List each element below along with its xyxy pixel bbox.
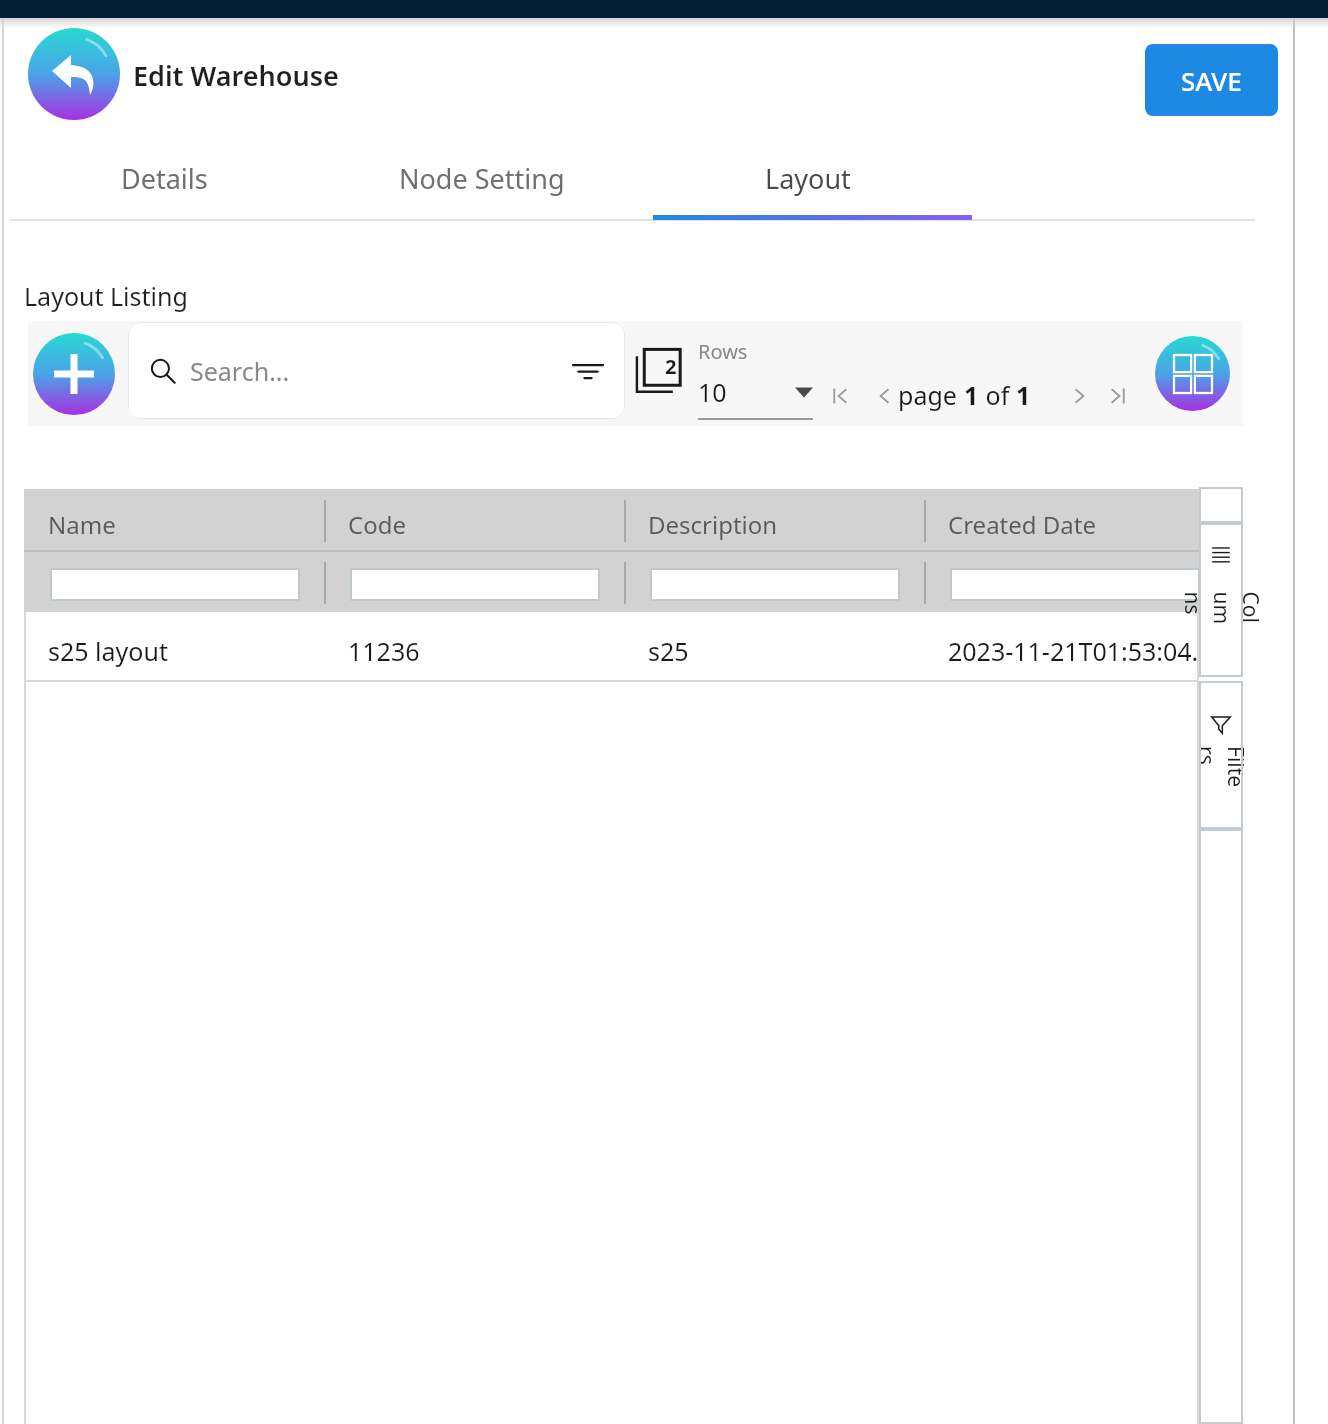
staticText: Node Setting (399, 160, 565, 197)
button[interactable]: Next page (1062, 372, 1098, 420)
button[interactable]: First page (822, 372, 858, 420)
staticText: Rows (698, 338, 748, 365)
button[interactable]: Back (28, 28, 120, 120)
button[interactable]: Add (33, 333, 115, 415)
staticText: SAVE (1181, 63, 1242, 98)
staticText: Edit Warehouse (133, 57, 339, 94)
staticText: Created Date (948, 508, 1096, 541)
button[interactable] (950, 568, 1200, 601)
staticText: 1 (1016, 378, 1031, 412)
button[interactable]: Details (81, 145, 248, 211)
button[interactable]: Columns (1199, 523, 1243, 677)
staticText: page (898, 378, 964, 412)
staticText: Name (48, 508, 116, 541)
button[interactable]: Page size (636, 348, 682, 394)
staticText: s25 layout (48, 634, 318, 668)
staticText: Description (648, 508, 778, 541)
staticText: Columns (1177, 591, 1264, 635)
button[interactable] (50, 568, 300, 601)
button[interactable] (24, 612, 1199, 680)
staticText: Details (121, 160, 208, 197)
staticText: 11236 (348, 634, 618, 668)
button[interactable]: Last page (1100, 372, 1136, 420)
staticText: 2023-11-21T01:53:04.61 (948, 634, 1218, 668)
staticText: of (979, 378, 1016, 412)
button[interactable] (350, 568, 600, 601)
button[interactable]: SAVE (1145, 44, 1278, 116)
staticText: Search... (190, 354, 290, 388)
staticText: Layout (765, 160, 851, 197)
button[interactable] (650, 568, 900, 601)
button[interactable]: Rows per page (698, 368, 813, 416)
staticText: 2 (665, 353, 677, 380)
button[interactable]: Layout (725, 145, 891, 211)
staticText: Layout Listing (24, 279, 188, 313)
staticText: Filters (1192, 746, 1250, 790)
staticText: 10 (698, 375, 727, 409)
button[interactable]: Filters (1199, 681, 1243, 829)
staticText: Code (348, 508, 406, 541)
button[interactable]: Previous page (866, 372, 902, 420)
button[interactable]: Node Setting (359, 145, 605, 211)
button[interactable]: Grid view (1155, 336, 1230, 411)
button[interactable]: Search... (128, 322, 625, 419)
staticText: 1 (964, 378, 979, 412)
staticText: s25 (648, 634, 918, 668)
